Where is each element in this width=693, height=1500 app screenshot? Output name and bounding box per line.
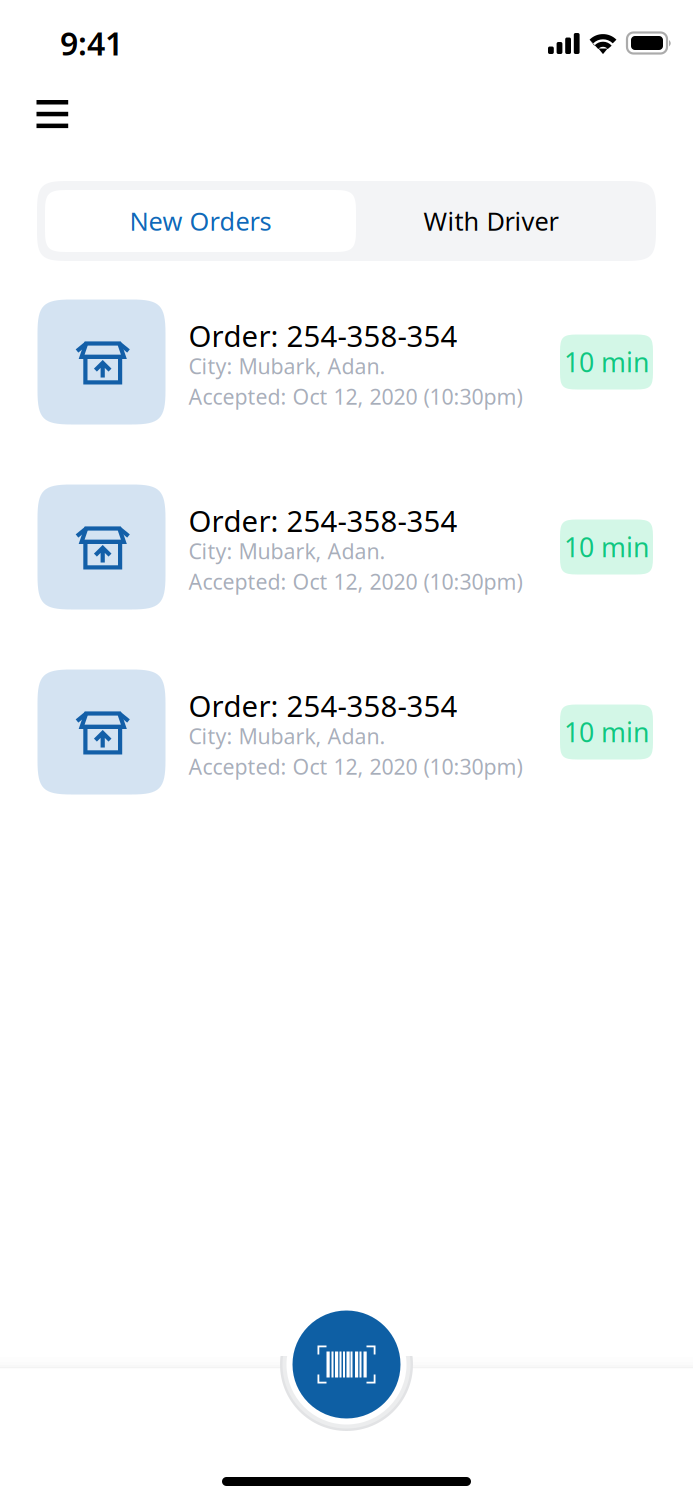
staticText: City: Mubark, Adan.	[188, 722, 385, 750]
button[interactable]: Order: 254-358-354	[0, 484, 693, 609]
staticText: 10 min	[564, 344, 649, 380]
staticText: Order: 254-358-354	[188, 316, 457, 355]
staticText: New Orders	[129, 204, 271, 238]
button[interactable]: New Orders	[45, 190, 356, 252]
staticText: With Driver	[423, 204, 558, 238]
staticText: Accepted: Oct 12, 2020 (10:30pm)	[188, 752, 522, 781]
button[interactable]: Order: 254-358-354	[0, 669, 693, 794]
staticText: 10 min	[564, 529, 649, 565]
staticText: 9:41	[60, 22, 123, 64]
button[interactable]: Scan barcode	[286, 1304, 406, 1424]
staticText: Order: 254-358-354	[188, 686, 457, 725]
staticText: Order: 254-358-354	[188, 501, 457, 540]
button[interactable]: Menu	[22, 86, 82, 142]
staticText: Accepted: Oct 12, 2020 (10:30pm)	[188, 382, 522, 411]
staticText: Accepted: Oct 12, 2020 (10:30pm)	[188, 567, 522, 596]
staticText: City: Mubark, Adan.	[188, 537, 385, 565]
staticText: 10 min	[564, 714, 649, 750]
staticText: City: Mubark, Adan.	[188, 352, 385, 380]
button[interactable]: With Driver	[356, 190, 626, 252]
button[interactable]: Order: 254-358-354	[0, 299, 693, 424]
